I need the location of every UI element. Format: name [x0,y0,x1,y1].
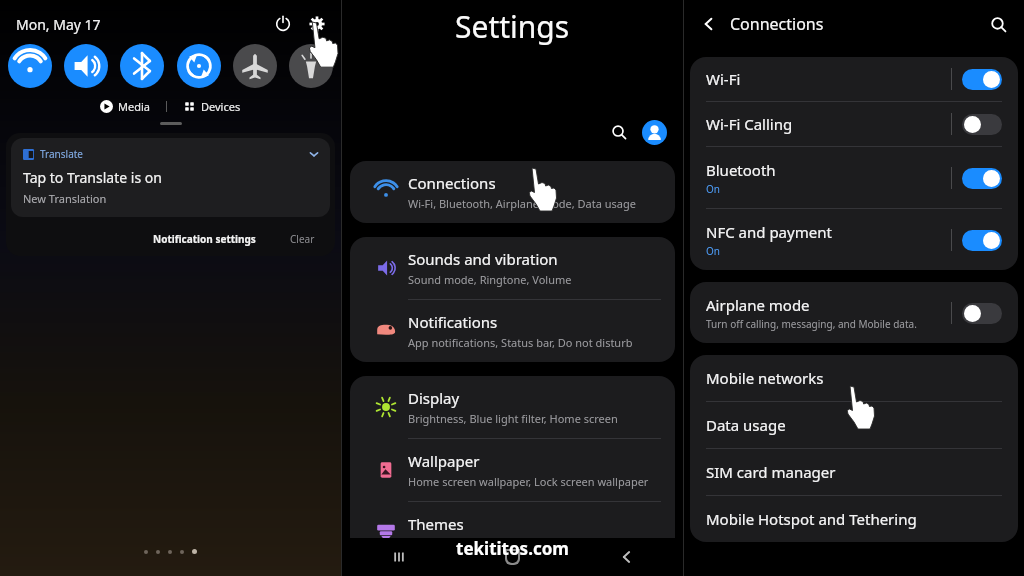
staticText: Wallpaper [408,451,480,471]
staticText: Themes [408,514,464,534]
staticText: Home screen wallpaper, Lock screen wallp… [408,474,649,489]
staticText: Wi-Fi [706,69,741,89]
button[interactable]: Settings [303,10,331,38]
staticText: Connections [408,173,496,193]
button[interactable]: Wi-Fi Calling toggle [962,114,1002,135]
staticText: Display [408,388,460,408]
button[interactable]: Search settings [606,119,632,145]
staticText: NFC and payment [706,222,832,242]
staticText: Data usage [706,415,786,435]
staticText: Clear [290,232,315,246]
staticText: Turn off calling, messaging, and Mobile … [706,317,917,331]
staticText: Wi-Fi, Bluetooth, Airplane mode, Data us… [408,196,636,211]
staticText: On [706,182,720,196]
staticText: Tap to Translate is on [23,168,162,187]
staticText: Wi-Fi Calling [706,114,793,134]
staticText: Translate [40,147,84,161]
staticText: Connections [730,13,824,35]
button[interactable]: Back [569,538,683,576]
button[interactable]: Notification settings [147,228,262,250]
staticText: Media [118,99,150,114]
button[interactable]: Bluetooth [120,44,164,88]
button[interactable]: Airplane mode [690,282,1018,343]
button[interactable]: Wi-Fi Calling [690,102,1018,147]
button[interactable]: Navigate up [692,8,724,40]
button[interactable]: Bluetooth [690,147,1018,209]
staticText: Notification settings [153,232,256,246]
button[interactable]: Themes [350,502,675,564]
button[interactable]: SIM card manager [690,449,1018,496]
button[interactable]: Notifications [350,300,675,362]
button[interactable]: Mobile networks [690,355,1018,402]
button[interactable]: Recents [342,538,455,576]
button[interactable]: Power [269,10,297,38]
button[interactable]: Data usage [690,402,1018,449]
staticText: Airplane mode [706,295,810,315]
staticText: New Translation [23,191,107,206]
button[interactable]: Translate [11,138,330,217]
staticText: Mobile networks [706,368,824,388]
staticText: App notifications, Status bar, Do not di… [408,335,633,350]
button[interactable]: Sound [64,44,108,88]
button[interactable]: Media [94,97,156,116]
button[interactable]: Search [984,10,1012,38]
staticText: On [706,244,720,258]
staticText: Devices [201,99,241,114]
button[interactable]: Wi-Fi [8,44,52,88]
staticText: Settings [455,6,570,47]
button[interactable]: Connections [350,161,675,223]
staticText: Sounds and vibration [408,249,558,269]
staticText: SIM card manager [706,462,836,482]
button[interactable]: Home [455,538,569,576]
button[interactable]: Display [350,376,675,439]
button[interactable]: Clear [284,228,321,250]
button[interactable]: Wallpaper [350,439,675,502]
button[interactable]: Wi-Fi toggle [962,69,1002,90]
button[interactable]: Devices [177,97,247,116]
staticText: Bluetooth [706,160,776,180]
button[interactable]: Bluetooth toggle [962,168,1002,189]
button[interactable]: Sounds and vibration [350,237,675,300]
button[interactable]: Airplane mode [233,44,277,88]
staticText: Themes, Wallpapers, Icons [408,537,546,552]
staticText: Notifications [408,312,498,332]
button[interactable]: Flashlight [289,44,333,88]
button[interactable]: Mobile Hotspot and Tethering [690,496,1018,542]
staticText: tekititos.com [456,537,569,560]
staticText: Mon, May 17 [16,15,101,34]
staticText: Sound mode, Ringtone, Volume [408,272,572,287]
button[interactable]: NFC and payment [690,209,1018,270]
button[interactable]: NFC and payment toggle [962,230,1002,251]
button[interactable]: Wi-Fi [690,57,1018,102]
button[interactable]: Auto rotate [177,44,221,88]
staticText: Mobile Hotspot and Tethering [706,509,917,529]
button[interactable]: Samsung account [642,120,667,145]
button[interactable]: Airplane mode toggle [962,303,1002,324]
staticText: Brightness, Blue light filter, Home scre… [408,411,618,426]
